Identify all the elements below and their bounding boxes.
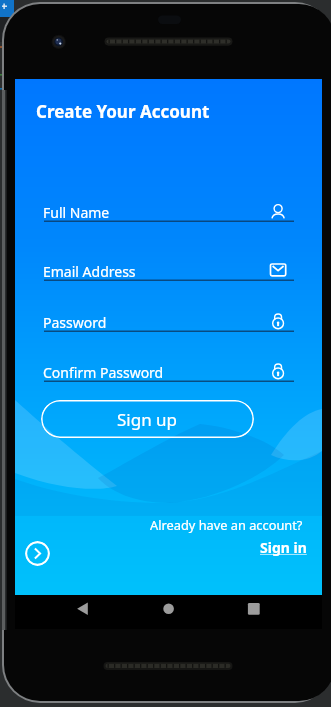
button[interactable]: Password	[44, 309, 294, 332]
staticText: Confirm Password	[43, 363, 164, 382]
button[interactable]: Back	[67, 595, 99, 627]
button[interactable]: Email Address	[44, 258, 294, 281]
staticText: Full Name	[43, 203, 110, 222]
staticText: Email Address	[43, 262, 136, 281]
staticText: Password	[43, 313, 107, 332]
button[interactable]: Confirm Password	[44, 359, 294, 382]
button[interactable]: Home	[153, 595, 185, 627]
staticText: Already have an account?	[150, 516, 303, 533]
button[interactable]: Full Name	[44, 199, 294, 222]
button[interactable]: Next	[25, 541, 50, 566]
staticText: Sign in	[260, 538, 307, 557]
staticText: Create Your Account	[36, 100, 210, 123]
button[interactable]: Recents	[238, 595, 270, 627]
staticText: Sign up	[117, 408, 178, 431]
button[interactable]: Sign in	[260, 538, 307, 557]
button[interactable]: Sign up	[41, 400, 254, 438]
